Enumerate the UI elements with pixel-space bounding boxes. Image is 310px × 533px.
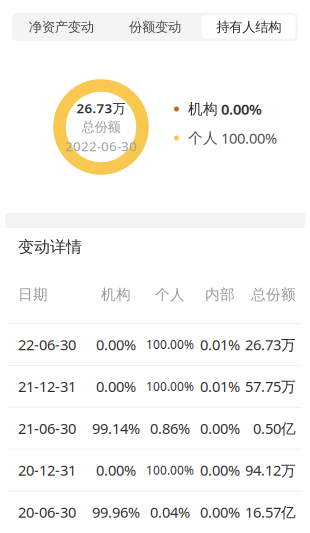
staticText: 22-06-30	[18, 335, 76, 354]
staticText: 94.12万	[245, 460, 296, 480]
staticText: 100.00%	[221, 128, 277, 148]
staticText: 16.57亿	[245, 502, 296, 522]
staticText: 总份额	[81, 119, 120, 135]
staticText: 100.00%	[146, 462, 194, 478]
staticText: 0.50亿	[253, 418, 296, 438]
staticText: 净资产变动	[29, 19, 94, 35]
staticText: 0.00%	[96, 460, 136, 480]
staticText: 0.00%	[96, 377, 136, 396]
staticText: 99.96%	[92, 502, 140, 522]
staticText: 机构	[101, 285, 131, 303]
staticText: 个人	[155, 285, 185, 303]
staticText: 0.01%	[200, 335, 240, 354]
staticText: 100.00%	[146, 336, 194, 352]
staticText: 内部	[205, 285, 235, 303]
staticText: 0.00%	[200, 418, 240, 438]
staticText: 0.00%	[200, 502, 240, 522]
button[interactable]: 净资产变动	[14, 15, 108, 39]
button[interactable]: 份额变动	[108, 15, 202, 39]
staticText: 20-12-31	[18, 460, 76, 480]
staticText: 99.14%	[92, 418, 140, 438]
staticText: 0.04%	[150, 502, 190, 522]
staticText: 0.01%	[200, 377, 240, 396]
staticText: 个人	[188, 129, 218, 147]
staticText: 机构	[188, 100, 218, 118]
staticText: 0.00%	[200, 460, 240, 480]
staticText: 总份额	[251, 285, 296, 303]
button[interactable]: 持有人结构	[202, 15, 295, 39]
staticText: 0.00%	[96, 335, 136, 354]
staticText: 21-06-30	[18, 418, 76, 438]
staticText: 份额变动	[129, 19, 181, 35]
staticText: 57.75万	[245, 377, 296, 396]
staticText: 日期	[18, 285, 48, 303]
staticText: 26.73万	[245, 335, 296, 354]
staticText: 21-12-31	[18, 377, 76, 396]
staticText: 0.86%	[150, 418, 190, 438]
staticText: 2022-06-30	[65, 137, 137, 155]
staticText: 持有人结构	[216, 19, 281, 35]
staticText: 100.00%	[146, 378, 194, 394]
staticText: 20-06-30	[18, 502, 76, 522]
staticText: 变动详情	[18, 237, 82, 257]
staticText: 0.00%	[221, 99, 262, 119]
staticText: 26.73万	[76, 99, 125, 117]
